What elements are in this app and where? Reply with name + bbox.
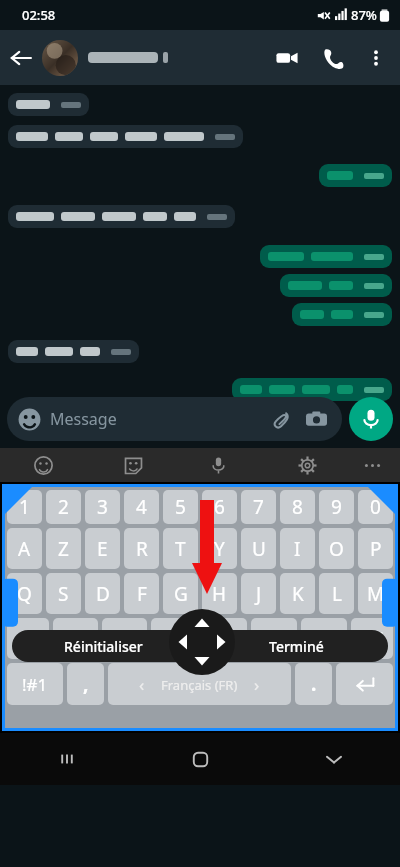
button[interactable]: Voice message: [349, 397, 393, 441]
button[interactable]: B: [251, 618, 297, 659]
staticText: I: [294, 536, 301, 562]
button[interactable]: Stickers: [121, 453, 145, 477]
button[interactable]: Call: [310, 35, 356, 81]
button[interactable]: Terminé: [205, 630, 388, 662]
button[interactable]: L: [319, 573, 354, 614]
staticText: X: [119, 626, 131, 652]
button[interactable]: K: [280, 573, 315, 614]
button[interactable]: V: [201, 618, 247, 659]
staticText: 02:58: [22, 6, 56, 24]
button[interactable]: 0: [358, 490, 393, 524]
button[interactable]: [336, 663, 393, 705]
staticText: H: [212, 581, 227, 607]
staticText: Français (FR): [161, 676, 238, 694]
button[interactable]: H: [202, 573, 237, 614]
staticText: .: [311, 671, 317, 697]
button[interactable]: R: [124, 528, 159, 569]
button[interactable]: .: [295, 663, 332, 705]
button[interactable]: C: [151, 618, 197, 659]
staticText: L: [332, 581, 342, 607]
staticText: 9: [331, 494, 342, 520]
button[interactable]: 2: [46, 490, 81, 524]
button[interactable]: Emoji: [31, 453, 55, 477]
button[interactable]: P: [358, 528, 393, 569]
button[interactable]: Camera: [301, 404, 331, 434]
button[interactable]: 9: [319, 490, 354, 524]
staticText: 1: [19, 494, 30, 520]
staticText: D: [96, 581, 110, 607]
button[interactable]: ,: [67, 663, 104, 705]
staticText: 8: [292, 494, 303, 520]
button[interactable]: Message: [7, 397, 342, 441]
button[interactable]: M: [358, 573, 393, 614]
staticText: !#1: [22, 673, 48, 696]
staticText: G: [174, 581, 188, 607]
staticText: T: [175, 536, 186, 562]
button[interactable]: 1: [7, 490, 42, 524]
button[interactable]: X: [102, 618, 147, 659]
button[interactable]: 5: [163, 490, 198, 524]
button[interactable]: ‹: [108, 663, 291, 705]
button[interactable]: Home: [134, 733, 267, 785]
staticText: 7: [253, 494, 264, 520]
staticText: S: [58, 581, 69, 607]
button[interactable]: 8: [280, 490, 315, 524]
button[interactable]: S: [46, 573, 81, 614]
staticText: W: [67, 626, 85, 652]
button[interactable]: Video call: [264, 35, 310, 81]
button[interactable]: E: [85, 528, 120, 569]
staticText: R: [136, 536, 148, 562]
button[interactable]: Voice input: [206, 453, 230, 477]
staticText: E: [97, 536, 108, 562]
button[interactable]: Z: [46, 528, 81, 569]
button[interactable]: N: [301, 618, 347, 659]
button[interactable]: W: [53, 618, 98, 659]
button[interactable]: A: [7, 528, 42, 569]
button[interactable]: Settings: [295, 453, 319, 477]
button[interactable]: Réinitialiser: [12, 630, 195, 662]
button[interactable]: Attach: [266, 404, 296, 434]
button[interactable]: More: [360, 453, 384, 477]
button[interactable]: U: [241, 528, 276, 569]
staticText: 87%: [351, 6, 377, 24]
button[interactable]: J: [241, 573, 276, 614]
staticText: M: [367, 581, 385, 607]
button[interactable]: Backspace: [351, 618, 393, 659]
button[interactable]: O: [319, 528, 354, 569]
button[interactable]: 4: [124, 490, 159, 524]
button[interactable]: Back: [0, 37, 42, 79]
button[interactable]: 7: [241, 490, 276, 524]
button[interactable]: G: [163, 573, 198, 614]
button[interactable]: 3: [85, 490, 120, 524]
button[interactable]: !#1: [7, 663, 63, 705]
staticText: N: [317, 626, 332, 652]
button[interactable]: Q: [7, 573, 42, 614]
staticText: B: [268, 626, 281, 652]
button[interactable]: 6: [202, 490, 237, 524]
button[interactable]: T: [163, 528, 198, 569]
button[interactable]: Y: [202, 528, 237, 569]
staticText: Terminé: [269, 637, 324, 656]
staticText: C: [168, 626, 181, 652]
staticText: P: [370, 536, 382, 562]
staticText: ‹: [139, 673, 145, 696]
staticText: J: [256, 581, 262, 607]
button[interactable]: Hide keyboard: [267, 733, 400, 785]
staticText: 2: [58, 494, 69, 520]
button[interactable]: More options: [356, 38, 396, 78]
button[interactable]: I: [280, 528, 315, 569]
button[interactable]: F: [124, 573, 159, 614]
staticText: 0: [370, 494, 381, 520]
staticText: ›: [254, 673, 260, 696]
button[interactable]: D: [85, 573, 120, 614]
staticText: U: [252, 536, 266, 562]
staticText: Réinitialiser: [64, 637, 143, 656]
staticText: 6: [214, 494, 225, 520]
button[interactable]: Recent apps: [0, 733, 134, 785]
staticText: V: [218, 626, 230, 652]
button[interactable]: Shift: [7, 618, 49, 659]
staticText: 5: [175, 494, 186, 520]
staticText: 3: [97, 494, 108, 520]
staticText: Message: [50, 408, 266, 430]
staticText: ,: [83, 671, 89, 697]
